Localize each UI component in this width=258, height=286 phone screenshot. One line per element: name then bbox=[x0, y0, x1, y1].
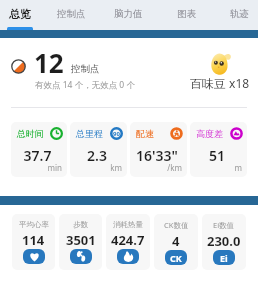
staticText: 高度差 bbox=[196, 128, 223, 139]
staticText: 12 bbox=[34, 45, 64, 80]
staticText: 4 bbox=[172, 232, 180, 250]
button[interactable]: 步数 bbox=[59, 214, 102, 270]
button[interactable]: Ei数值 bbox=[202, 214, 246, 270]
staticText: Ei数值 bbox=[213, 220, 235, 230]
staticText: 总览 bbox=[9, 7, 31, 21]
button[interactable]: 轨迹 bbox=[216, 0, 258, 28]
button[interactable]: 消耗热量 bbox=[106, 214, 150, 270]
staticText: 控制点 bbox=[57, 8, 86, 20]
staticText: 图表 bbox=[177, 8, 196, 20]
staticText: CK数值 bbox=[164, 220, 189, 230]
button[interactable]: 高度差 bbox=[190, 122, 247, 177]
button[interactable]: 总里程 bbox=[70, 122, 127, 177]
staticText: 90 bbox=[113, 130, 120, 138]
staticText: 51 bbox=[190, 146, 244, 165]
staticText: 424.7 bbox=[111, 231, 145, 249]
staticText: min bbox=[11, 162, 62, 173]
button[interactable]: 总时间 bbox=[11, 122, 67, 177]
staticText: 3501 bbox=[66, 231, 96, 249]
staticText: 控制点 bbox=[71, 63, 100, 75]
staticText: 平均心率 bbox=[19, 220, 49, 229]
button[interactable]: CK数值 bbox=[154, 214, 198, 270]
staticText: CK bbox=[170, 252, 182, 264]
staticText: 轨迹 bbox=[230, 8, 249, 20]
staticText: /km bbox=[130, 162, 182, 173]
button[interactable]: 总览 bbox=[0, 0, 43, 28]
staticText: 114 bbox=[22, 231, 45, 249]
staticText: 总时间 bbox=[17, 128, 44, 139]
other: 百味豆 bbox=[209, 52, 232, 75]
button[interactable]: 脑力值 bbox=[105, 0, 151, 28]
staticText: 总里程 bbox=[76, 128, 103, 139]
other: 控制点图标 bbox=[11, 59, 26, 74]
staticText: 消耗热量 bbox=[113, 220, 143, 229]
staticText: 脑力值 bbox=[114, 8, 143, 20]
staticText: 230.0 bbox=[207, 232, 241, 250]
staticText: 配速 bbox=[136, 128, 154, 139]
button[interactable]: 平均心率 bbox=[12, 214, 55, 270]
button[interactable]: 控制点 bbox=[48, 0, 94, 28]
staticText: 百味豆 x18 bbox=[190, 75, 250, 91]
staticText: Ei bbox=[220, 252, 228, 264]
staticText: km bbox=[70, 162, 122, 173]
staticText: m bbox=[190, 162, 242, 173]
staticText: 37.7 bbox=[11, 146, 64, 165]
staticText: 有效点 14 个，无效点 0 个 bbox=[35, 79, 135, 91]
button[interactable]: 图表 bbox=[163, 0, 209, 28]
button[interactable]: 配速 bbox=[130, 122, 187, 177]
staticText: 2.3 bbox=[70, 146, 124, 165]
staticText: 16'33" bbox=[130, 146, 184, 165]
staticText: 步数 bbox=[73, 220, 88, 229]
